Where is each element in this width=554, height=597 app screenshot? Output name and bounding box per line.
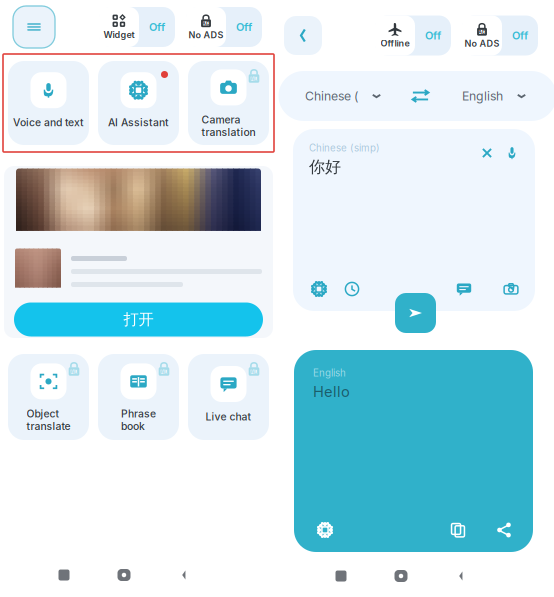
staticText: 打开	[123, 310, 153, 329]
staticText: 你好	[309, 157, 341, 177]
button[interactable]: AD	[462, 15, 538, 55]
staticText: Object translate	[26, 407, 70, 433]
button[interactable]: Home	[101, 559, 147, 591]
button[interactable]: Offline	[375, 15, 451, 55]
button[interactable]: Back	[438, 560, 484, 592]
button[interactable]: Live chat	[188, 354, 269, 440]
staticText: Off	[512, 29, 528, 42]
button[interactable]: Phrase book	[98, 354, 179, 440]
staticText: AD	[250, 75, 258, 82]
button[interactable]: Swap languages	[402, 71, 438, 121]
staticText: Live chat	[205, 410, 251, 423]
staticText: AD	[160, 368, 168, 375]
button[interactable]: AD	[186, 7, 262, 47]
staticText: Offline	[380, 38, 409, 49]
staticText: No ADS	[188, 29, 223, 40]
staticText: Off	[236, 20, 252, 34]
button[interactable]: Share	[492, 518, 516, 542]
button[interactable]: English	[446, 71, 542, 121]
staticText: Hello	[313, 383, 350, 400]
button[interactable]: Object translate	[8, 354, 89, 440]
button[interactable]: Translate	[395, 293, 436, 333]
staticText: AD	[202, 20, 210, 27]
staticText: English	[313, 367, 346, 379]
button[interactable]: 打开	[4, 302, 273, 336]
staticText: No ADS	[464, 38, 499, 49]
button[interactable]: Camera translation	[188, 61, 269, 145]
staticText: Chinese (	[305, 89, 358, 103]
button[interactable]: Voice and text	[8, 61, 89, 145]
staticText: Chinese (simp)	[309, 142, 380, 154]
button[interactable]: AI Assistant	[98, 61, 179, 145]
button[interactable]: Camera	[498, 276, 524, 302]
button[interactable]: Widget	[99, 7, 175, 47]
staticText: AI Assistant	[108, 116, 169, 129]
button[interactable]: Recents	[41, 559, 87, 591]
button[interactable]: Clear	[476, 142, 498, 164]
staticText: AD	[478, 29, 486, 35]
staticText: Off	[425, 29, 441, 42]
staticText: AD	[250, 368, 258, 375]
staticText: Phrase book	[121, 407, 156, 433]
staticText: Voice and text	[13, 116, 84, 129]
staticText: AD	[70, 368, 78, 375]
button[interactable]: AI	[313, 518, 337, 542]
button[interactable]: AI	[306, 276, 332, 302]
button[interactable]: Menu	[13, 6, 55, 48]
staticText: Camera translation	[201, 113, 255, 139]
button[interactable]: Copy	[446, 518, 470, 542]
button[interactable]: Voice input	[503, 142, 521, 164]
button[interactable]: Conversation	[451, 276, 477, 302]
button[interactable]: Chinese (	[292, 71, 394, 121]
button[interactable]: History	[339, 276, 365, 302]
button[interactable]: Recents	[318, 560, 364, 592]
button[interactable]: Back	[161, 559, 207, 591]
staticText: Off	[149, 20, 165, 34]
button[interactable]: Back	[284, 16, 322, 55]
button[interactable]: Home	[378, 560, 424, 592]
staticText: Widget	[103, 29, 134, 40]
staticText: English	[462, 89, 503, 103]
